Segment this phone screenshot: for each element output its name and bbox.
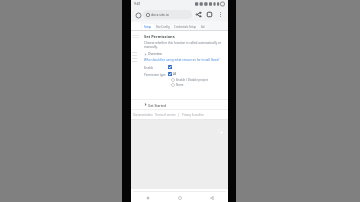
button[interactable]: Home bbox=[164, 193, 196, 202]
staticText: Enable / Disable project bbox=[176, 78, 208, 82]
staticText: Enable bbox=[144, 66, 154, 70]
staticText: Site Config bbox=[156, 25, 170, 29]
staticText: Choose whether this function is called a… bbox=[144, 41, 225, 49]
staticText: | bbox=[178, 113, 180, 117]
button[interactable]: More options bbox=[216, 10, 225, 19]
button[interactable]: Checkbox bbox=[168, 72, 172, 76]
button[interactable]: Checkbox bbox=[168, 65, 172, 69]
staticText: Credentials Setup bbox=[174, 25, 197, 29]
staticText: Set Permissions bbox=[144, 34, 175, 39]
staticText: Get Started bbox=[148, 103, 166, 107]
button[interactable]: Radio button bbox=[171, 78, 208, 82]
staticText: 9:41 bbox=[134, 2, 141, 6]
staticText: Permission type bbox=[144, 73, 166, 77]
staticText: Overview bbox=[148, 52, 162, 56]
button[interactable]: Help bbox=[218, 129, 224, 135]
button[interactable]: Recents bbox=[131, 193, 164, 202]
staticText: docs.site.io bbox=[151, 12, 169, 17]
button[interactable]: Ad bbox=[199, 24, 207, 30]
button[interactable]: docs.site.io bbox=[143, 10, 192, 19]
button[interactable]: Home bbox=[134, 11, 142, 19]
button[interactable]: Privacy & cookies bbox=[182, 113, 204, 117]
staticText: Ad bbox=[201, 25, 205, 29]
staticText: Setup bbox=[144, 25, 152, 29]
button[interactable]: Credentials Setup bbox=[172, 24, 199, 30]
button[interactable]: Overview bbox=[144, 52, 162, 56]
staticText: All bbox=[173, 72, 177, 76]
button[interactable]: Get Started bbox=[131, 100, 228, 109]
button[interactable]: Site Config bbox=[154, 24, 172, 30]
button[interactable]: Radio button bbox=[171, 83, 184, 87]
staticText: Who should be using what resources for i… bbox=[144, 58, 220, 62]
button[interactable]: Share bbox=[194, 10, 203, 19]
staticText: None bbox=[176, 83, 184, 87]
button[interactable]: Back bbox=[196, 193, 228, 202]
button[interactable]: Radio button bbox=[171, 78, 175, 82]
button[interactable]: Radio button bbox=[171, 83, 175, 87]
button[interactable]: Setup bbox=[142, 24, 154, 30]
button[interactable]: Tabs bbox=[205, 10, 214, 19]
button[interactable]: Terms of service bbox=[155, 113, 176, 117]
button[interactable]: Documentation bbox=[133, 113, 153, 117]
